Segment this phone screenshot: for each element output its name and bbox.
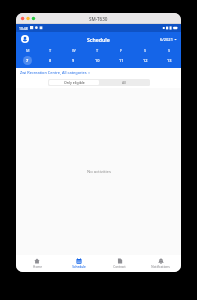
- button[interactable]: 10: [93, 56, 102, 65]
- staticText: M: [26, 48, 30, 53]
- staticText: Notifications: [151, 265, 170, 269]
- staticText: S: [144, 48, 147, 53]
- staticText: 6/2021: [160, 37, 173, 42]
- staticText: Contract: [113, 265, 126, 269]
- button[interactable]: Schedule: [58, 255, 99, 272]
- staticText: SM-T630: [89, 16, 108, 22]
- staticText: 10: [95, 58, 100, 63]
- button[interactable]: 6/2021: [160, 37, 177, 42]
- staticText: 13: [167, 58, 172, 63]
- staticText: No activities: [87, 169, 111, 175]
- staticText: F: [120, 48, 123, 53]
- staticText: W: [72, 48, 76, 53]
- button[interactable]: 12: [141, 56, 150, 65]
- staticText: 9: [72, 58, 75, 63]
- staticText: Only eligible: [64, 80, 85, 85]
- staticText: 11: [119, 58, 124, 63]
- button[interactable]: Contract: [99, 255, 140, 272]
- button[interactable]: 8: [46, 56, 55, 65]
- button[interactable]: All: [99, 80, 149, 85]
- button[interactable]: Home: [16, 255, 58, 272]
- staticText: T: [49, 48, 52, 53]
- staticText: Home: [33, 265, 42, 269]
- button[interactable]: 11: [117, 56, 126, 65]
- button[interactable]: Notifications: [140, 255, 181, 272]
- staticText: 8: [49, 58, 52, 63]
- button[interactable]: 7: [23, 56, 32, 65]
- staticText: Schedule: [87, 36, 110, 43]
- staticText: S: [168, 48, 171, 53]
- staticText: T: [96, 48, 99, 53]
- button[interactable]: Only eligible: [49, 80, 99, 85]
- staticText: 10:48: [19, 26, 28, 31]
- staticText: Zwi Recreation Centre, All categories: [20, 70, 87, 75]
- button[interactable]: 13: [165, 56, 174, 65]
- staticText: Schedule: [72, 265, 86, 269]
- button[interactable]: Zwi Recreation Centre, All categories: [16, 68, 181, 77]
- staticText: 7: [26, 58, 29, 63]
- button[interactable]: Profile: [21, 35, 29, 43]
- staticText: All: [122, 80, 127, 85]
- button[interactable]: 9: [69, 56, 78, 65]
- staticText: 12: [143, 58, 148, 63]
